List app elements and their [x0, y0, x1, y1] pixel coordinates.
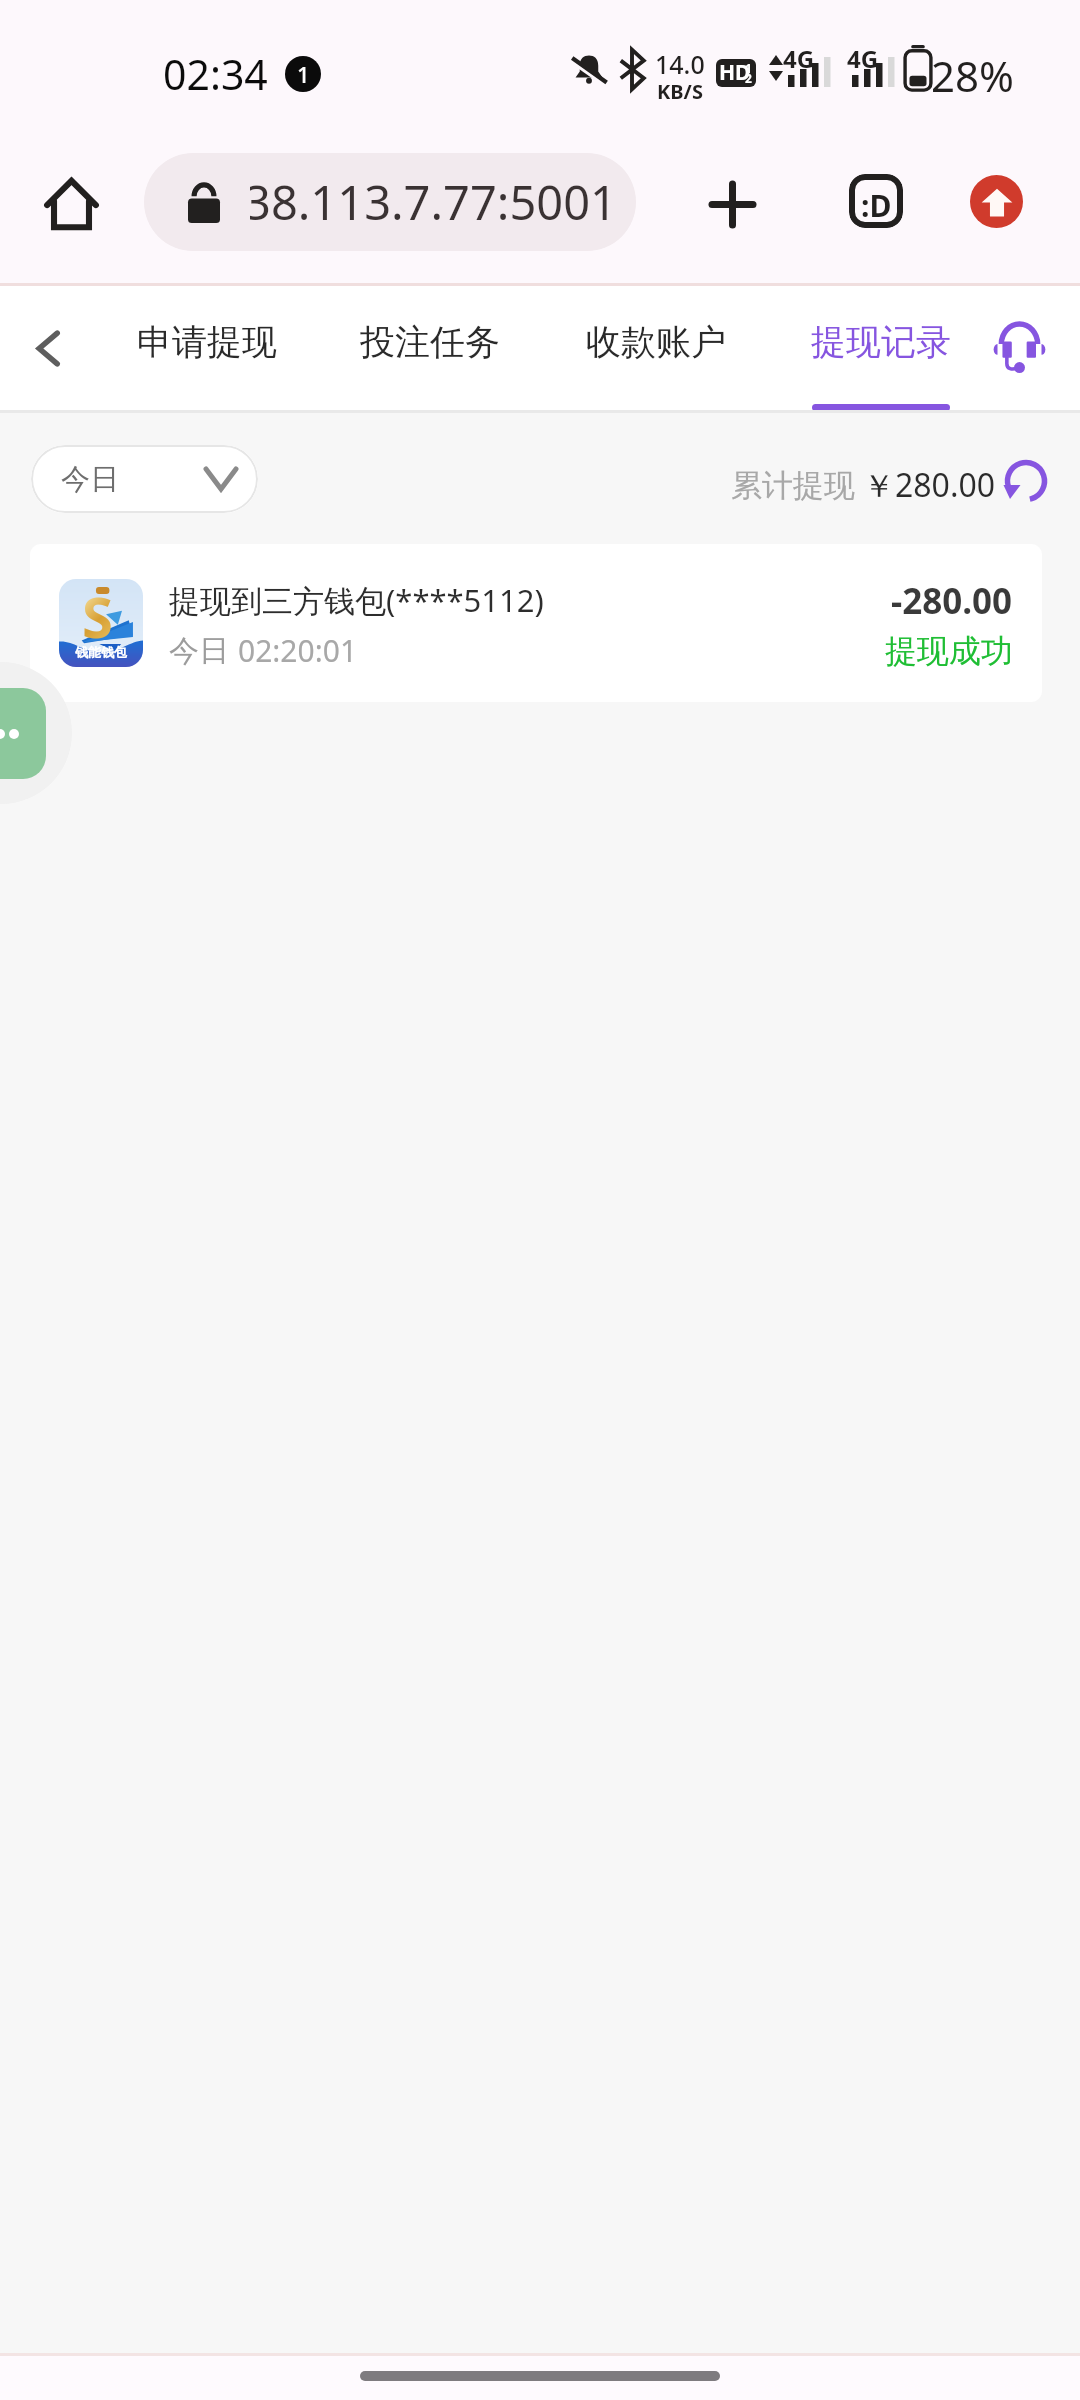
button[interactable]: 提现记录: [795, 286, 967, 410]
button[interactable]: 38.113.7.77:5001: [144, 153, 636, 251]
staticText: S: [82, 579, 113, 654]
button[interactable]: 投注任务: [344, 286, 516, 410]
staticText: 2: [745, 70, 752, 86]
button[interactable]: :D: [849, 174, 903, 228]
staticText: 钱能钱包: [75, 644, 127, 660]
button[interactable]: S: [30, 544, 1042, 702]
staticText: 28%: [931, 47, 1014, 104]
staticText: 提现成功: [885, 631, 1013, 671]
staticText: 14.0: [655, 47, 705, 81]
staticText: 收款账户: [586, 320, 726, 364]
staticText: 今日: [169, 632, 229, 670]
staticText: 累计提现: [731, 466, 855, 505]
button[interactable]: 今日: [31, 445, 258, 513]
staticText: 申请提现: [137, 320, 277, 364]
staticText: 1: [745, 60, 752, 76]
staticText: HD: [719, 59, 751, 86]
staticText: 4G: [847, 42, 879, 75]
button[interactable]: Refresh: [1000, 459, 1052, 511]
staticText: 02:34: [163, 46, 268, 102]
staticText: -280.00: [891, 577, 1013, 625]
button[interactable]: Upload: [970, 175, 1023, 228]
staticText: ￥280.00: [863, 463, 996, 507]
staticText: 提现到三方钱包(****5112): [169, 579, 544, 621]
button[interactable]: Home: [31, 164, 111, 244]
staticText: 今日: [61, 461, 119, 498]
staticText: 4G: [783, 42, 815, 75]
staticText: 提现记录: [811, 320, 951, 364]
staticText: 02:20:01: [238, 630, 358, 671]
staticText: 投注任务: [360, 320, 500, 364]
button[interactable]: New tab: [692, 164, 772, 244]
button[interactable]: 收款账户: [570, 286, 742, 410]
button[interactable]: Customer service: [984, 311, 1054, 381]
staticText: 38.113.7.77:5001: [250, 170, 617, 234]
button[interactable]: More options: [0, 688, 46, 779]
staticText: KB/S: [657, 78, 703, 105]
staticText: :D: [861, 185, 892, 226]
staticText: 1: [297, 59, 310, 89]
button[interactable]: 申请提现: [121, 286, 293, 410]
button[interactable]: Back: [8, 308, 88, 388]
